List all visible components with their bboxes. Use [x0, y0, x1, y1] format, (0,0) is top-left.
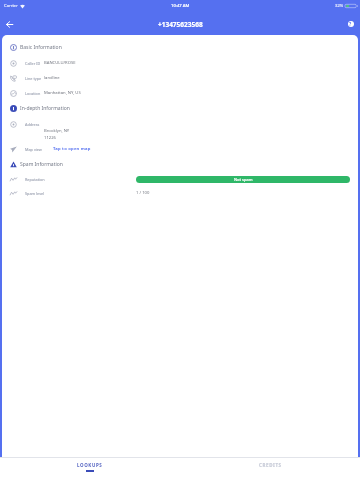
staticText: BANCULU/ROSE	[44, 60, 76, 66]
button[interactable]: Help	[344, 17, 357, 30]
staticText: Reputation	[25, 177, 45, 182]
staticText: 10:47 AM	[171, 3, 190, 9]
staticText: Not spam	[234, 177, 253, 182]
staticText: Manhattan, NY, US	[44, 90, 81, 96]
staticText: Address	[25, 122, 40, 127]
staticText: Basic Information	[20, 44, 62, 51]
button[interactable]: Back	[2, 17, 17, 32]
staticText: Carrier	[4, 3, 18, 9]
button[interactable]: Line type	[0, 72, 360, 84]
button[interactable]: LOOKUPS	[0, 457, 180, 480]
staticText: Spam Information	[20, 161, 63, 168]
staticText: landline	[44, 75, 60, 81]
staticText: Caller ID	[25, 61, 41, 66]
staticText: 32%	[335, 3, 344, 9]
staticText: CREDITS	[259, 462, 282, 468]
staticText: LOOKUPS	[77, 462, 103, 468]
staticText: Location	[25, 91, 41, 96]
button[interactable]: Caller ID	[0, 57, 360, 69]
staticText: 1 / 100	[136, 190, 150, 196]
staticText: Tap to open map	[53, 146, 91, 152]
staticText: Spam level	[25, 191, 45, 196]
button[interactable]: Map view	[0, 143, 360, 155]
staticText: 11226	[44, 135, 56, 141]
button[interactable]: Address	[0, 118, 360, 140]
staticText: ?	[349, 21, 352, 27]
button[interactable]: Location	[0, 87, 360, 99]
staticText: +13475623568	[158, 20, 203, 29]
button[interactable]: CREDITS	[180, 457, 360, 480]
staticText: In-depth Information	[20, 105, 70, 112]
staticText: Map view	[25, 147, 42, 152]
button[interactable]: Spam level	[0, 187, 360, 199]
staticText: Brooklyn, NY	[44, 128, 70, 134]
staticText: Line type	[25, 76, 42, 81]
